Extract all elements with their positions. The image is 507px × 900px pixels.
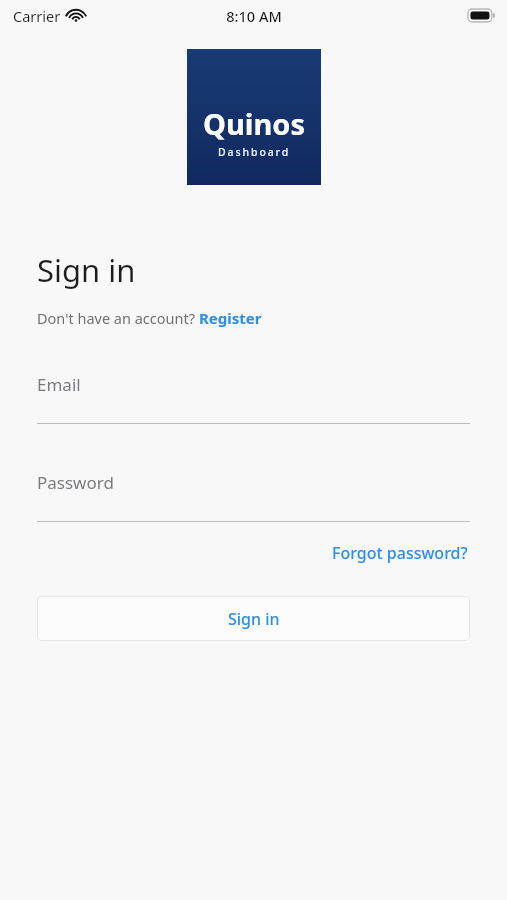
staticText: Dashboard xyxy=(218,145,291,159)
staticText: Carrier xyxy=(13,6,61,26)
staticText: Email xyxy=(37,373,81,396)
button[interactable]: Password xyxy=(37,471,470,522)
staticText: Forgot password? xyxy=(332,542,468,564)
staticText: Password xyxy=(37,471,114,494)
staticText: Sign in xyxy=(37,249,136,291)
staticText: Quinos xyxy=(203,104,305,143)
button[interactable]: Forgot password? xyxy=(330,538,470,568)
staticText: Don't have an account? xyxy=(37,308,199,328)
button[interactable]: Email xyxy=(37,373,470,424)
staticText: Register xyxy=(199,308,262,328)
staticText: 8:10 AM xyxy=(226,6,282,26)
button[interactable]: Sign in xyxy=(37,596,470,641)
other: Battery full xyxy=(468,9,495,22)
button[interactable]: Don't have an account? xyxy=(37,308,262,328)
staticText: Sign in xyxy=(228,608,280,630)
